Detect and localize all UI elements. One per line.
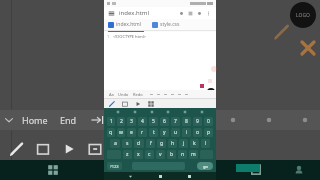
button[interactable]: index.html (119, 9, 150, 17)
button[interactable]: Key option 3 (165, 109, 171, 115)
button[interactable]: 2 (117, 117, 125, 126)
button[interactable]: Key option 1 (132, 109, 138, 115)
button[interactable]: Redo (186, 9, 195, 18)
button[interactable]: More options (204, 9, 213, 18)
button[interactable]: Insert 0 (148, 91, 155, 98)
button[interactable]: Tools (298, 38, 318, 58)
button[interactable]: Expand (2, 113, 16, 127)
button[interactable]: o (193, 128, 202, 137)
button[interactable]: Redo (131, 92, 145, 97)
button[interactable]: m (189, 150, 198, 159)
button[interactable]: y (160, 128, 169, 137)
button[interactable]: 3 (127, 117, 136, 126)
button[interactable]: 4 (138, 117, 147, 126)
button[interactable]: Home (22, 114, 48, 126)
button[interactable]: c (145, 150, 154, 159)
button[interactable]: l (201, 139, 210, 148)
button[interactable]: Edit (272, 22, 292, 42)
button[interactable]: k (190, 139, 199, 148)
button[interactable]: index.html (108, 21, 142, 28)
button[interactable]: Apps (46, 163, 60, 177)
button[interactable]: Back (127, 173, 134, 180)
staticText: n (181, 151, 185, 158)
button[interactable]: 5 (149, 117, 158, 126)
button[interactable]: Tab (89, 112, 105, 128)
button[interactable]: Run (134, 100, 142, 108)
button[interactable]: Run (195, 9, 204, 18)
button[interactable]: Recents (170, 163, 184, 177)
button[interactable]: h (168, 139, 177, 148)
button[interactable]: Key option 2 (149, 109, 155, 115)
button[interactable]: Menu (262, 113, 276, 127)
button[interactable]: 1 (107, 117, 115, 126)
button[interactable]: u (171, 128, 180, 137)
button[interactable]: Insert 1 (155, 91, 162, 98)
button[interactable]: Preview (147, 100, 155, 108)
button[interactable]: Help (298, 113, 312, 127)
button[interactable]: g (157, 139, 166, 148)
button[interactable]: Window (86, 140, 104, 158)
button[interactable]: ?123 (107, 162, 122, 170)
button[interactable]: Files (248, 162, 264, 178)
staticText: b (170, 151, 174, 158)
button[interactable]: 0 (204, 117, 213, 126)
button[interactable]: Key option 0 (115, 109, 121, 115)
button[interactable]: t (149, 128, 158, 137)
button[interactable]: p (204, 128, 213, 137)
button[interactable]: Enter (197, 162, 213, 170)
button[interactable]: j (179, 139, 188, 148)
button[interactable]: n (178, 150, 187, 159)
button[interactable]: w (117, 128, 125, 137)
staticText: 2 (120, 118, 123, 125)
staticText: 6 (163, 118, 166, 125)
button[interactable]: 6 (160, 117, 169, 126)
button[interactable]: style.css (152, 21, 180, 28)
button[interactable]: 7 (171, 117, 180, 126)
button[interactable]: f (146, 139, 155, 148)
button[interactable]: 9 (193, 117, 202, 126)
button[interactable]: Pen (8, 140, 26, 158)
staticText: t (153, 129, 155, 136)
button[interactable]: q (107, 128, 115, 137)
button[interactable]: Edit (108, 100, 116, 108)
button[interactable]: Key option 4 (182, 109, 188, 115)
button[interactable]: a (110, 139, 120, 148)
button[interactable]: s (122, 139, 132, 148)
button[interactable]: Insert 5 (183, 91, 190, 98)
button[interactable]: v (156, 150, 165, 159)
button[interactable]: e (127, 128, 136, 137)
button[interactable]: 8 (182, 117, 191, 126)
button[interactable]: b (167, 150, 176, 159)
button[interactable]: Play (190, 113, 204, 127)
button[interactable]: x (134, 150, 143, 159)
button[interactable]: Home (157, 173, 164, 180)
button[interactable]: Aa (107, 92, 116, 97)
button[interactable]: r (138, 128, 147, 137)
button[interactable]: Key option 5 (199, 109, 205, 115)
button[interactable]: List (226, 113, 240, 127)
button[interactable]: Insert 3 (169, 91, 176, 98)
staticText: g (160, 140, 164, 147)
button[interactable]: Recents (186, 173, 193, 180)
button[interactable]: End (60, 114, 77, 126)
button[interactable]: Account (292, 163, 306, 177)
button[interactable]: i (182, 128, 191, 137)
button[interactable]: Insert 2 (162, 91, 169, 98)
button[interactable]: Logo (290, 2, 316, 28)
button[interactable]: z (123, 150, 132, 159)
button[interactable]: d (134, 139, 144, 148)
button[interactable]: Undo (116, 92, 131, 97)
staticText: z (126, 151, 129, 158)
staticText: c (148, 151, 151, 158)
button[interactable]: Folder (121, 100, 129, 108)
button[interactable]: Play (60, 140, 78, 158)
button[interactable]: Frame (34, 140, 52, 158)
button[interactable]: Undo (177, 9, 186, 18)
button[interactable]: Insert 4 (176, 91, 183, 98)
button[interactable]: Menu (107, 9, 116, 18)
